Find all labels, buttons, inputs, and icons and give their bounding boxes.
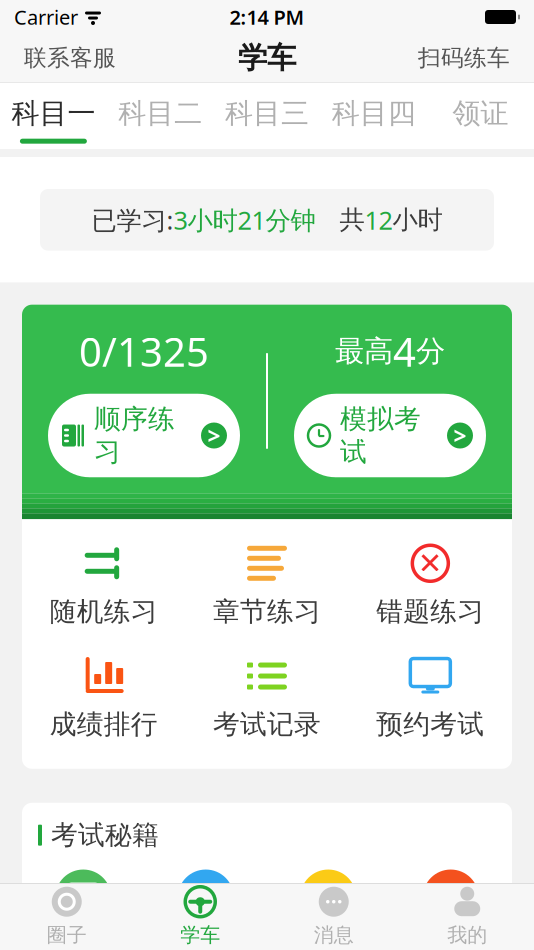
staticText: 答题技巧 xyxy=(152,936,260,950)
staticText: 模拟考试 xyxy=(340,403,421,468)
button[interactable]: 顺序练习 xyxy=(48,394,240,477)
staticText: 小时 xyxy=(392,204,442,235)
staticText: 章节练习 xyxy=(213,595,321,628)
button[interactable]: 科目三 xyxy=(214,80,320,152)
staticText: 4 xyxy=(393,325,416,378)
button[interactable]: 章节练习 xyxy=(185,529,349,642)
staticText: 考试秘籍 xyxy=(51,819,159,852)
staticText: 学车 xyxy=(238,40,296,76)
staticText: Carrier xyxy=(14,4,78,30)
staticText: ▶ xyxy=(446,893,456,909)
staticText: 顺序练习 xyxy=(94,403,175,468)
button[interactable]: ✕ xyxy=(349,529,512,642)
staticText: > xyxy=(207,420,220,451)
button[interactable]: 科目四 xyxy=(320,80,427,152)
staticText: 领证 xyxy=(453,96,509,131)
button[interactable]: 成绩排行 xyxy=(22,642,185,755)
button[interactable]: 圈子 xyxy=(0,881,133,950)
staticText: 科目四 xyxy=(332,96,416,131)
staticText: 错题练习 xyxy=(376,595,484,628)
button[interactable]: 考试记录 xyxy=(185,642,349,755)
staticText: 成绩排行 xyxy=(50,708,158,741)
button[interactable]: 图标速记 xyxy=(267,863,389,950)
staticText: 扫码练车 xyxy=(418,44,510,72)
button[interactable]: 随机练习 xyxy=(22,529,185,642)
staticText: 0/1325 xyxy=(79,325,209,378)
staticText: 学习视频 xyxy=(397,936,505,950)
staticText: 联系客服 xyxy=(24,44,116,72)
button[interactable]: 联系客服 xyxy=(12,34,128,82)
button[interactable]: 科一考规 xyxy=(22,863,144,950)
button[interactable]: 消息 xyxy=(267,881,400,950)
staticText: 最高 xyxy=(335,333,393,369)
button[interactable]: 我的 xyxy=(400,881,534,950)
staticText: 我的 xyxy=(447,923,487,947)
button[interactable]: 科目一 xyxy=(0,80,107,152)
staticText: 3小时21分钟 xyxy=(173,203,315,237)
staticText: 图标速记 xyxy=(274,936,382,950)
staticText: 科目二 xyxy=(118,96,202,131)
button[interactable]: 科目二 xyxy=(107,80,214,152)
staticText: 分 xyxy=(416,333,445,369)
staticText: ★ xyxy=(190,877,222,918)
staticText: 科目三 xyxy=(225,96,309,131)
staticText: 圈子 xyxy=(47,923,87,947)
button[interactable]: 扫码练车 xyxy=(406,34,522,82)
staticText: 随机练习 xyxy=(50,595,158,628)
button[interactable]: 领证 xyxy=(427,80,534,152)
button[interactable]: 预约考试 xyxy=(349,642,512,755)
staticText: 预约考试 xyxy=(376,708,484,741)
button[interactable]: 模拟考试 xyxy=(294,394,486,477)
staticText: ✕ xyxy=(418,547,443,580)
button[interactable]: ▶ xyxy=(389,863,512,950)
staticText: 科目一 xyxy=(11,96,95,131)
button[interactable]: ★ xyxy=(144,863,267,950)
staticText: 学车 xyxy=(180,923,220,947)
staticText: 12 xyxy=(364,203,392,237)
staticText: 消息 xyxy=(314,923,354,947)
staticText: 已学习: xyxy=(91,203,173,237)
staticText: 2:14 PM xyxy=(229,4,304,30)
button[interactable]: 学车 xyxy=(133,881,267,950)
staticText: 考试记录 xyxy=(213,708,321,741)
staticText: > xyxy=(453,420,466,451)
staticText: 共 xyxy=(315,204,364,235)
staticText: 科一考规 xyxy=(29,936,137,950)
